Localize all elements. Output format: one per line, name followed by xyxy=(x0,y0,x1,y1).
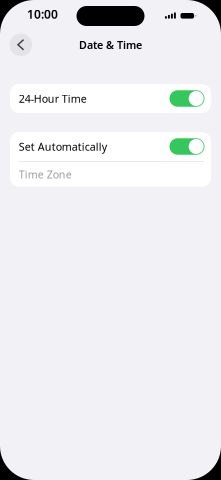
button[interactable]: Set Automatically xyxy=(10,132,211,161)
button[interactable]: Back xyxy=(9,33,32,56)
button[interactable]: Time Zone xyxy=(10,162,211,187)
staticText: Date & Time xyxy=(79,38,142,52)
button[interactable]: 24-Hour Time xyxy=(10,84,211,113)
staticText: 10:00 xyxy=(27,6,58,22)
staticText: Set Automatically xyxy=(19,139,107,154)
staticText: Time Zone xyxy=(19,167,72,181)
staticText: 24-Hour Time xyxy=(19,91,87,106)
